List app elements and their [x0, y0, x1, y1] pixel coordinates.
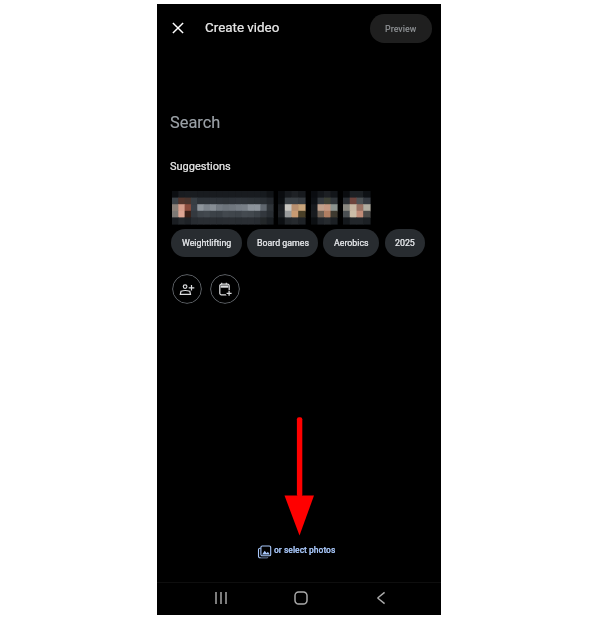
button[interactable]: Add date [210, 274, 240, 304]
button[interactable]: Weightlifting [171, 229, 242, 257]
button[interactable]: 2025 [385, 229, 425, 257]
button[interactable]: Aerobics [323, 229, 379, 257]
button[interactable]: Photo suggestion [311, 191, 337, 224]
button[interactable]: or select photos [257, 542, 341, 560]
button[interactable]: Add people [172, 274, 202, 304]
button[interactable]: Person suggestion [172, 191, 273, 224]
button[interactable]: Close [162, 12, 194, 44]
staticText: or select photos [274, 545, 336, 555]
button[interactable]: Photo suggestion [278, 191, 305, 224]
staticText: Board games [257, 238, 309, 248]
staticText: Preview [385, 24, 417, 34]
button[interactable]: Back [361, 582, 401, 615]
button[interactable]: Recent apps [201, 582, 241, 615]
staticText: Weightlifting [182, 238, 232, 248]
staticText: Search [170, 113, 221, 132]
staticText: Aerobics [334, 238, 369, 248]
button[interactable]: Photo suggestion [343, 191, 370, 224]
button[interactable]: Preview [370, 14, 432, 43]
staticText: Suggestions [170, 160, 231, 173]
button[interactable]: Board games [247, 229, 318, 257]
button[interactable]: Home [281, 582, 321, 615]
staticText: 2025 [395, 238, 415, 248]
staticText: Create video [205, 20, 280, 36]
